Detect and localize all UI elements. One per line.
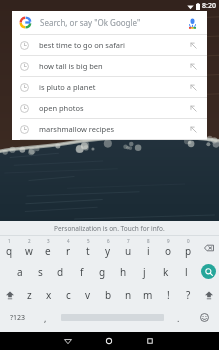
staticText: q bbox=[6, 244, 13, 258]
button[interactable]: open photos bbox=[12, 98, 207, 118]
button[interactable]: Home bbox=[88, 332, 129, 350]
button[interactable]: m bbox=[138, 283, 158, 306]
staticText: d bbox=[57, 265, 64, 279]
staticText: n bbox=[125, 288, 132, 302]
button[interactable]: ? bbox=[178, 283, 198, 306]
staticText: ?123 bbox=[10, 313, 26, 323]
button[interactable]: marshmallow recipes bbox=[12, 119, 207, 139]
button[interactable]: Search bbox=[197, 260, 219, 283]
button[interactable]: 6 bbox=[98, 236, 118, 260]
staticText: v bbox=[85, 288, 91, 302]
staticText: c bbox=[66, 288, 71, 302]
staticText: 1 bbox=[8, 238, 11, 244]
staticText: j bbox=[143, 265, 146, 279]
staticText: w bbox=[25, 244, 33, 258]
button[interactable]: 5 bbox=[78, 236, 98, 260]
button[interactable]: Shift bbox=[198, 283, 219, 306]
button[interactable]: is pluto a planet bbox=[12, 77, 207, 97]
button[interactable]: h bbox=[113, 260, 134, 283]
staticText: Search, or say "Ok Google" bbox=[40, 17, 141, 28]
staticText: h bbox=[120, 265, 127, 279]
staticText: 9 bbox=[167, 238, 170, 244]
button[interactable]: 8 bbox=[138, 236, 158, 260]
button[interactable]: a bbox=[10, 260, 30, 283]
staticText: y bbox=[105, 244, 111, 258]
button[interactable]: how tall is big ben bbox=[12, 56, 207, 76]
button[interactable]: 1 bbox=[0, 236, 19, 260]
button[interactable]: Voice search bbox=[185, 16, 199, 30]
button[interactable]: d bbox=[50, 260, 71, 283]
button[interactable]: , bbox=[35, 306, 56, 329]
button[interactable]: Insert suggestion bbox=[187, 60, 199, 72]
staticText: g bbox=[99, 265, 106, 279]
button[interactable]: 3 bbox=[38, 236, 58, 260]
staticText: 8:20 bbox=[202, 1, 216, 11]
staticText: t bbox=[86, 244, 90, 258]
button[interactable]: best time to go on safari bbox=[12, 35, 207, 55]
staticText: , bbox=[44, 312, 47, 324]
staticText: 2 bbox=[28, 238, 31, 244]
staticText: i bbox=[147, 244, 150, 258]
staticText: 5 bbox=[87, 238, 90, 244]
staticText: 6 bbox=[107, 238, 110, 244]
button[interactable]: z bbox=[20, 283, 39, 306]
staticText: how tall is big ben bbox=[39, 61, 103, 71]
button[interactable]: Search, or say "Ok Google" bbox=[12, 11, 207, 34]
staticText: k bbox=[163, 265, 169, 279]
button[interactable]: Insert suggestion bbox=[187, 102, 199, 114]
staticText: 8 bbox=[147, 238, 150, 244]
staticText: l bbox=[185, 265, 188, 279]
staticText: . bbox=[177, 312, 180, 324]
button[interactable]: 2 bbox=[19, 236, 38, 260]
button[interactable]: j bbox=[134, 260, 155, 283]
button[interactable]: . bbox=[168, 306, 189, 329]
button[interactable]: ?123 bbox=[0, 306, 35, 329]
button[interactable]: Personalization is on. Touch for info. bbox=[0, 221, 219, 235]
button[interactable]: Space bbox=[56, 306, 168, 329]
button[interactable]: Back bbox=[48, 332, 88, 350]
staticText: ! bbox=[167, 288, 170, 302]
staticText: ? bbox=[186, 288, 191, 302]
button[interactable]: Insert suggestion bbox=[187, 39, 199, 51]
button[interactable]: f bbox=[71, 260, 92, 283]
staticText: f bbox=[80, 265, 84, 279]
staticText: open photos bbox=[39, 103, 84, 113]
button[interactable]: b bbox=[98, 283, 118, 306]
staticText: s bbox=[38, 265, 43, 279]
button[interactable]: x bbox=[39, 283, 58, 306]
button[interactable]: Recent apps bbox=[129, 332, 170, 350]
button[interactable]: 0 bbox=[178, 236, 198, 260]
staticText: 4 bbox=[67, 238, 70, 244]
staticText: r bbox=[66, 244, 71, 258]
button[interactable]: Insert suggestion bbox=[187, 123, 199, 135]
staticText: 7 bbox=[127, 238, 130, 244]
staticText: 0 bbox=[187, 238, 190, 244]
staticText: e bbox=[45, 244, 51, 258]
button[interactable]: Insert suggestion bbox=[187, 81, 199, 93]
staticText: z bbox=[27, 288, 32, 302]
button[interactable]: c bbox=[58, 283, 78, 306]
button[interactable]: Backspace bbox=[198, 236, 219, 260]
button[interactable]: ! bbox=[158, 283, 178, 306]
staticText: b bbox=[105, 288, 112, 302]
button[interactable]: n bbox=[118, 283, 138, 306]
staticText: Personalization is on. Touch for info. bbox=[54, 224, 165, 233]
button[interactable]: v bbox=[78, 283, 98, 306]
button[interactable]: k bbox=[155, 260, 176, 283]
staticText: x bbox=[46, 288, 52, 302]
button[interactable]: s bbox=[30, 260, 50, 283]
staticText: p bbox=[185, 244, 192, 258]
staticText: marshmallow recipes bbox=[39, 124, 115, 134]
staticText: a bbox=[17, 265, 23, 279]
button[interactable]: Shift bbox=[0, 283, 20, 306]
staticText: u bbox=[125, 244, 132, 258]
button[interactable]: Emoji bbox=[189, 306, 219, 329]
staticText: m bbox=[143, 288, 153, 302]
button[interactable]: 4 bbox=[58, 236, 78, 260]
button[interactable]: 9 bbox=[158, 236, 178, 260]
button[interactable]: l bbox=[176, 260, 197, 283]
staticText: is pluto a planet bbox=[39, 82, 96, 92]
button[interactable]: g bbox=[92, 260, 113, 283]
button[interactable]: 7 bbox=[118, 236, 138, 260]
staticText: 3 bbox=[47, 238, 50, 244]
